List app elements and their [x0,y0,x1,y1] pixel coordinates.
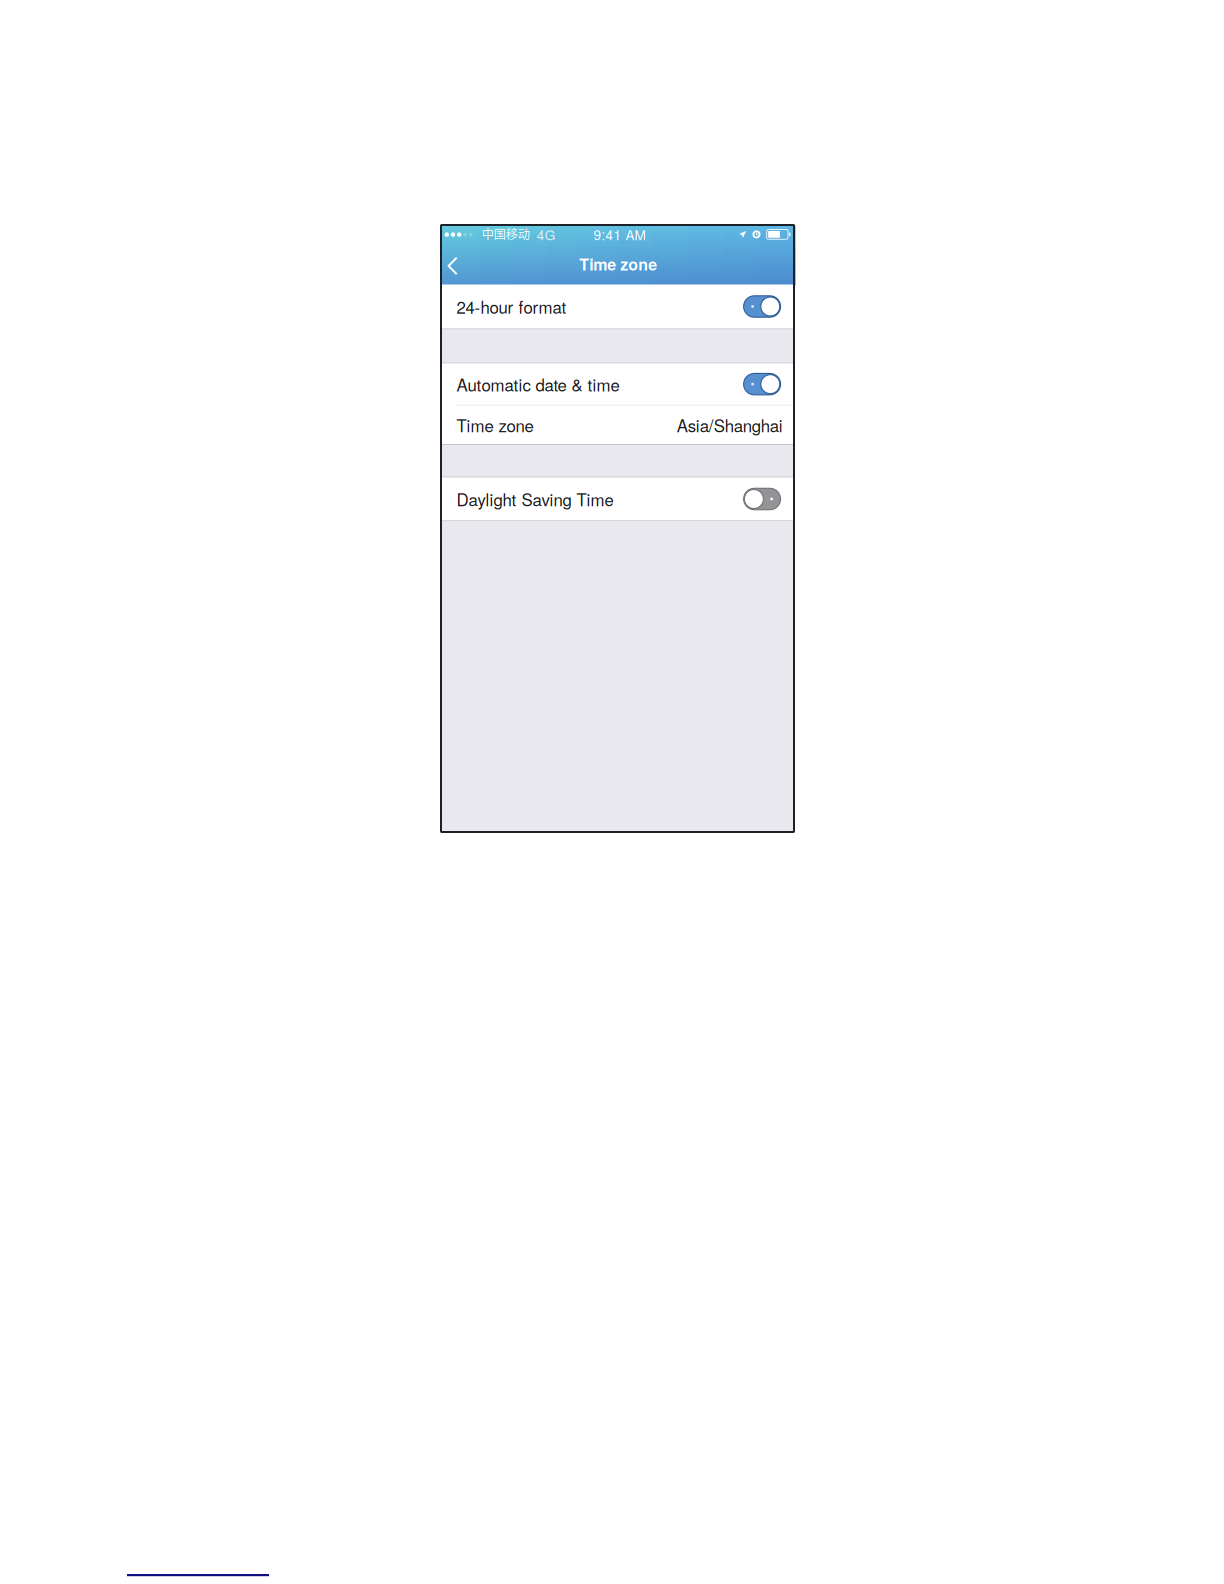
staticText: Daylight Saving Time [456,487,613,511]
button[interactable]: Automatic date & time [441,363,794,405]
button[interactable]: Time zone [441,406,794,444]
staticText: Time zone [456,413,533,437]
staticText: Time zone [579,252,657,275]
staticText: 4G [537,225,556,244]
staticText: Asia/Shanghai [677,413,783,437]
staticText: 9:41 AM [593,225,645,244]
staticText: Automatic date & time [456,372,619,396]
staticText: 24-hour format [456,294,566,319]
button[interactable]: Back [441,246,471,286]
button[interactable]: Daylight Saving Time [441,478,794,520]
button[interactable]: 24-hour format [441,284,794,328]
staticText: 中国移动 [482,225,530,243]
